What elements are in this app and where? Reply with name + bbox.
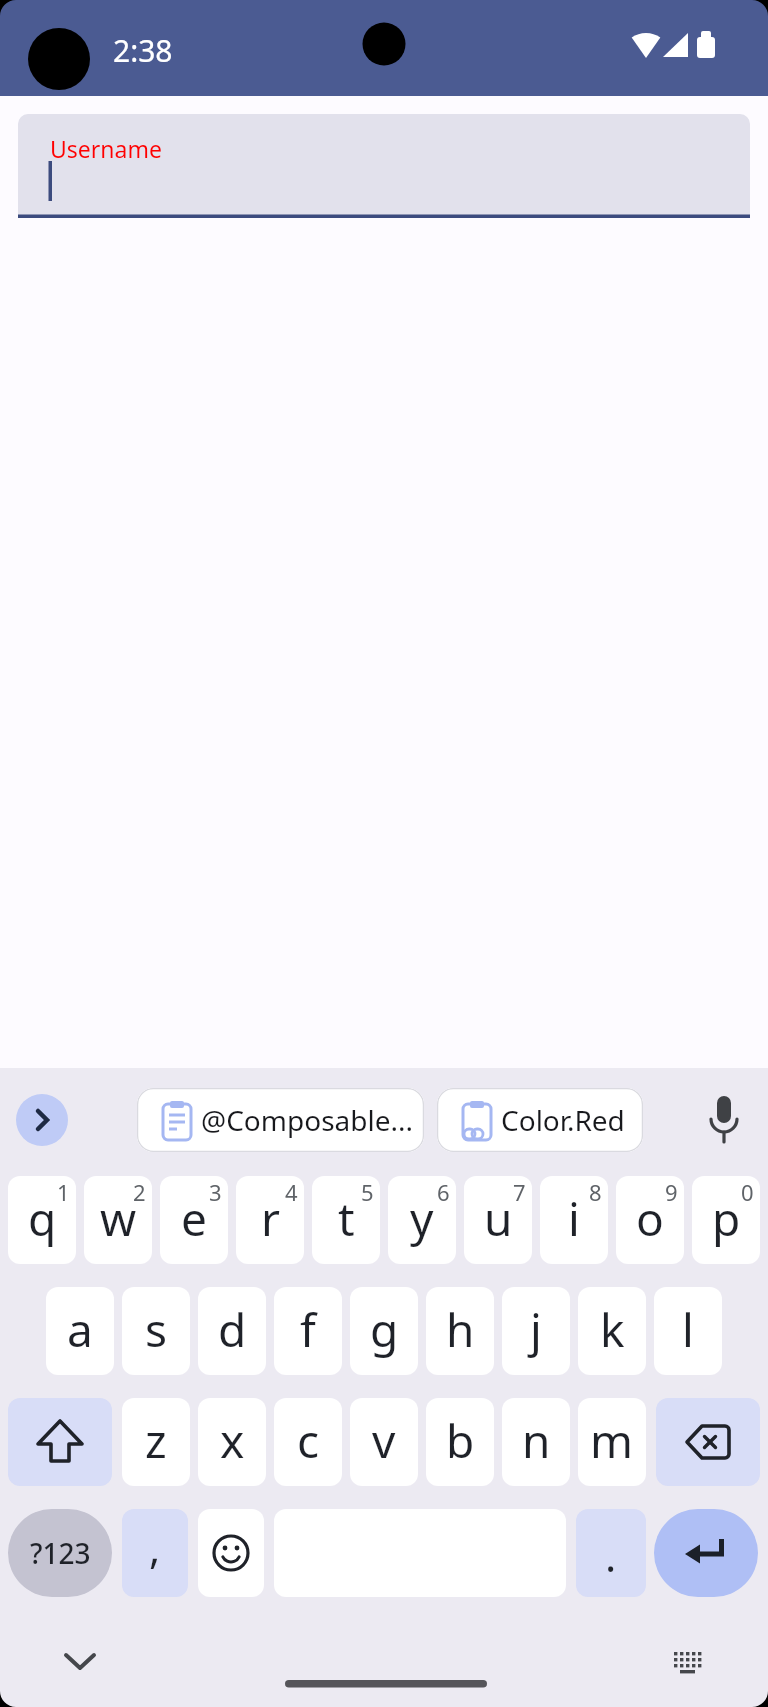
button[interactable]: , (122, 1509, 188, 1597)
staticText: q (28, 1187, 57, 1250)
staticText: z (145, 1409, 167, 1472)
staticText: 2 (133, 1177, 146, 1207)
staticText: Color.Red (501, 1101, 625, 1139)
button[interactable] (8, 1398, 112, 1486)
button[interactable] (656, 1398, 760, 1486)
button[interactable]: s (122, 1287, 190, 1375)
button[interactable]: t (312, 1176, 380, 1264)
button[interactable]: . (576, 1509, 646, 1597)
button[interactable]: a (46, 1287, 114, 1375)
staticText: 8 (589, 1177, 602, 1207)
staticText: t (338, 1187, 355, 1250)
staticText: e (181, 1187, 207, 1250)
staticText: d (218, 1298, 247, 1361)
staticText: b (446, 1409, 475, 1472)
button[interactable]: u (464, 1176, 532, 1264)
staticText: k (600, 1298, 625, 1361)
button[interactable] (654, 1509, 758, 1597)
button[interactable]: h (426, 1287, 494, 1375)
staticText: m (590, 1409, 634, 1472)
button[interactable]: @Composable... (137, 1088, 424, 1152)
staticText: v (372, 1409, 396, 1472)
staticText: 0 (741, 1177, 754, 1207)
staticText: 5 (361, 1177, 374, 1207)
button[interactable]: k (578, 1287, 646, 1375)
staticText: h (446, 1298, 475, 1361)
staticText: x (220, 1409, 245, 1472)
button[interactable]: i (540, 1176, 608, 1264)
button[interactable]: Color.Red (437, 1088, 643, 1152)
button[interactable]: j (502, 1287, 570, 1375)
staticText: y (410, 1187, 434, 1250)
button[interactable] (16, 1094, 68, 1146)
button[interactable]: v (350, 1398, 418, 1486)
button[interactable] (198, 1509, 264, 1597)
button[interactable]: x (198, 1398, 266, 1486)
staticText: u (484, 1187, 513, 1250)
staticText: r (261, 1187, 280, 1250)
staticText: 4 (285, 1177, 298, 1207)
button[interactable]: n (502, 1398, 570, 1486)
staticText: g (370, 1298, 399, 1361)
button[interactable]: m (578, 1398, 646, 1486)
button[interactable]: o (616, 1176, 684, 1264)
button[interactable]: r (236, 1176, 304, 1264)
staticText: @Composable... (201, 1101, 414, 1139)
staticText: f (300, 1298, 316, 1361)
staticText: Username (50, 133, 162, 164)
button[interactable]: w (84, 1176, 152, 1264)
button[interactable]: q (8, 1176, 76, 1264)
staticText: o (636, 1187, 664, 1250)
button[interactable]: l (654, 1287, 722, 1375)
button[interactable]: z (122, 1398, 190, 1486)
staticText: 6 (437, 1177, 450, 1207)
staticText: j (530, 1298, 542, 1361)
staticText: w (100, 1187, 137, 1250)
staticText: p (712, 1187, 741, 1250)
staticText: . (605, 1527, 617, 1584)
button[interactable]: e (160, 1176, 228, 1264)
staticText: ?123 (30, 1534, 91, 1572)
staticText: c (297, 1409, 320, 1472)
staticText: a (67, 1298, 93, 1361)
staticText: , (149, 1519, 161, 1576)
button[interactable]: g (350, 1287, 418, 1375)
staticText: 1 (57, 1177, 70, 1207)
button[interactable]: b (426, 1398, 494, 1486)
button[interactable]: c (274, 1398, 342, 1486)
staticText: i (568, 1187, 580, 1250)
staticText: s (145, 1298, 168, 1361)
staticText: 2:38 (113, 30, 173, 71)
staticText: n (522, 1409, 551, 1472)
staticText: 3 (209, 1177, 222, 1207)
staticText: l (682, 1298, 694, 1361)
staticText: 7 (513, 1177, 526, 1207)
button[interactable]: f (274, 1287, 342, 1375)
button[interactable]: y (388, 1176, 456, 1264)
staticText: 9 (665, 1177, 678, 1207)
button[interactable]: Username (18, 114, 750, 218)
button[interactable]: ?123 (8, 1509, 112, 1597)
button[interactable]: d (198, 1287, 266, 1375)
button[interactable]: p (692, 1176, 760, 1264)
